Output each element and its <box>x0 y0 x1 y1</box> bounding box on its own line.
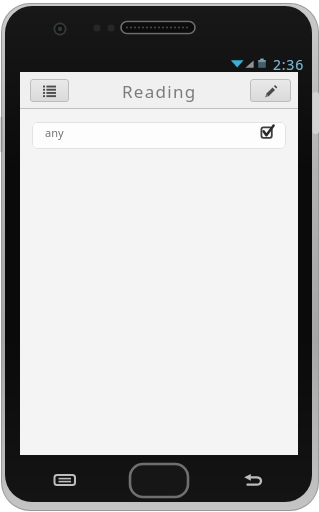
staticText: Reading <box>122 80 197 103</box>
staticText: 2:36 <box>273 55 304 72</box>
staticText: any <box>45 125 64 140</box>
button[interactable]: any <box>32 122 286 149</box>
button[interactable] <box>250 79 291 102</box>
button[interactable] <box>30 79 69 102</box>
